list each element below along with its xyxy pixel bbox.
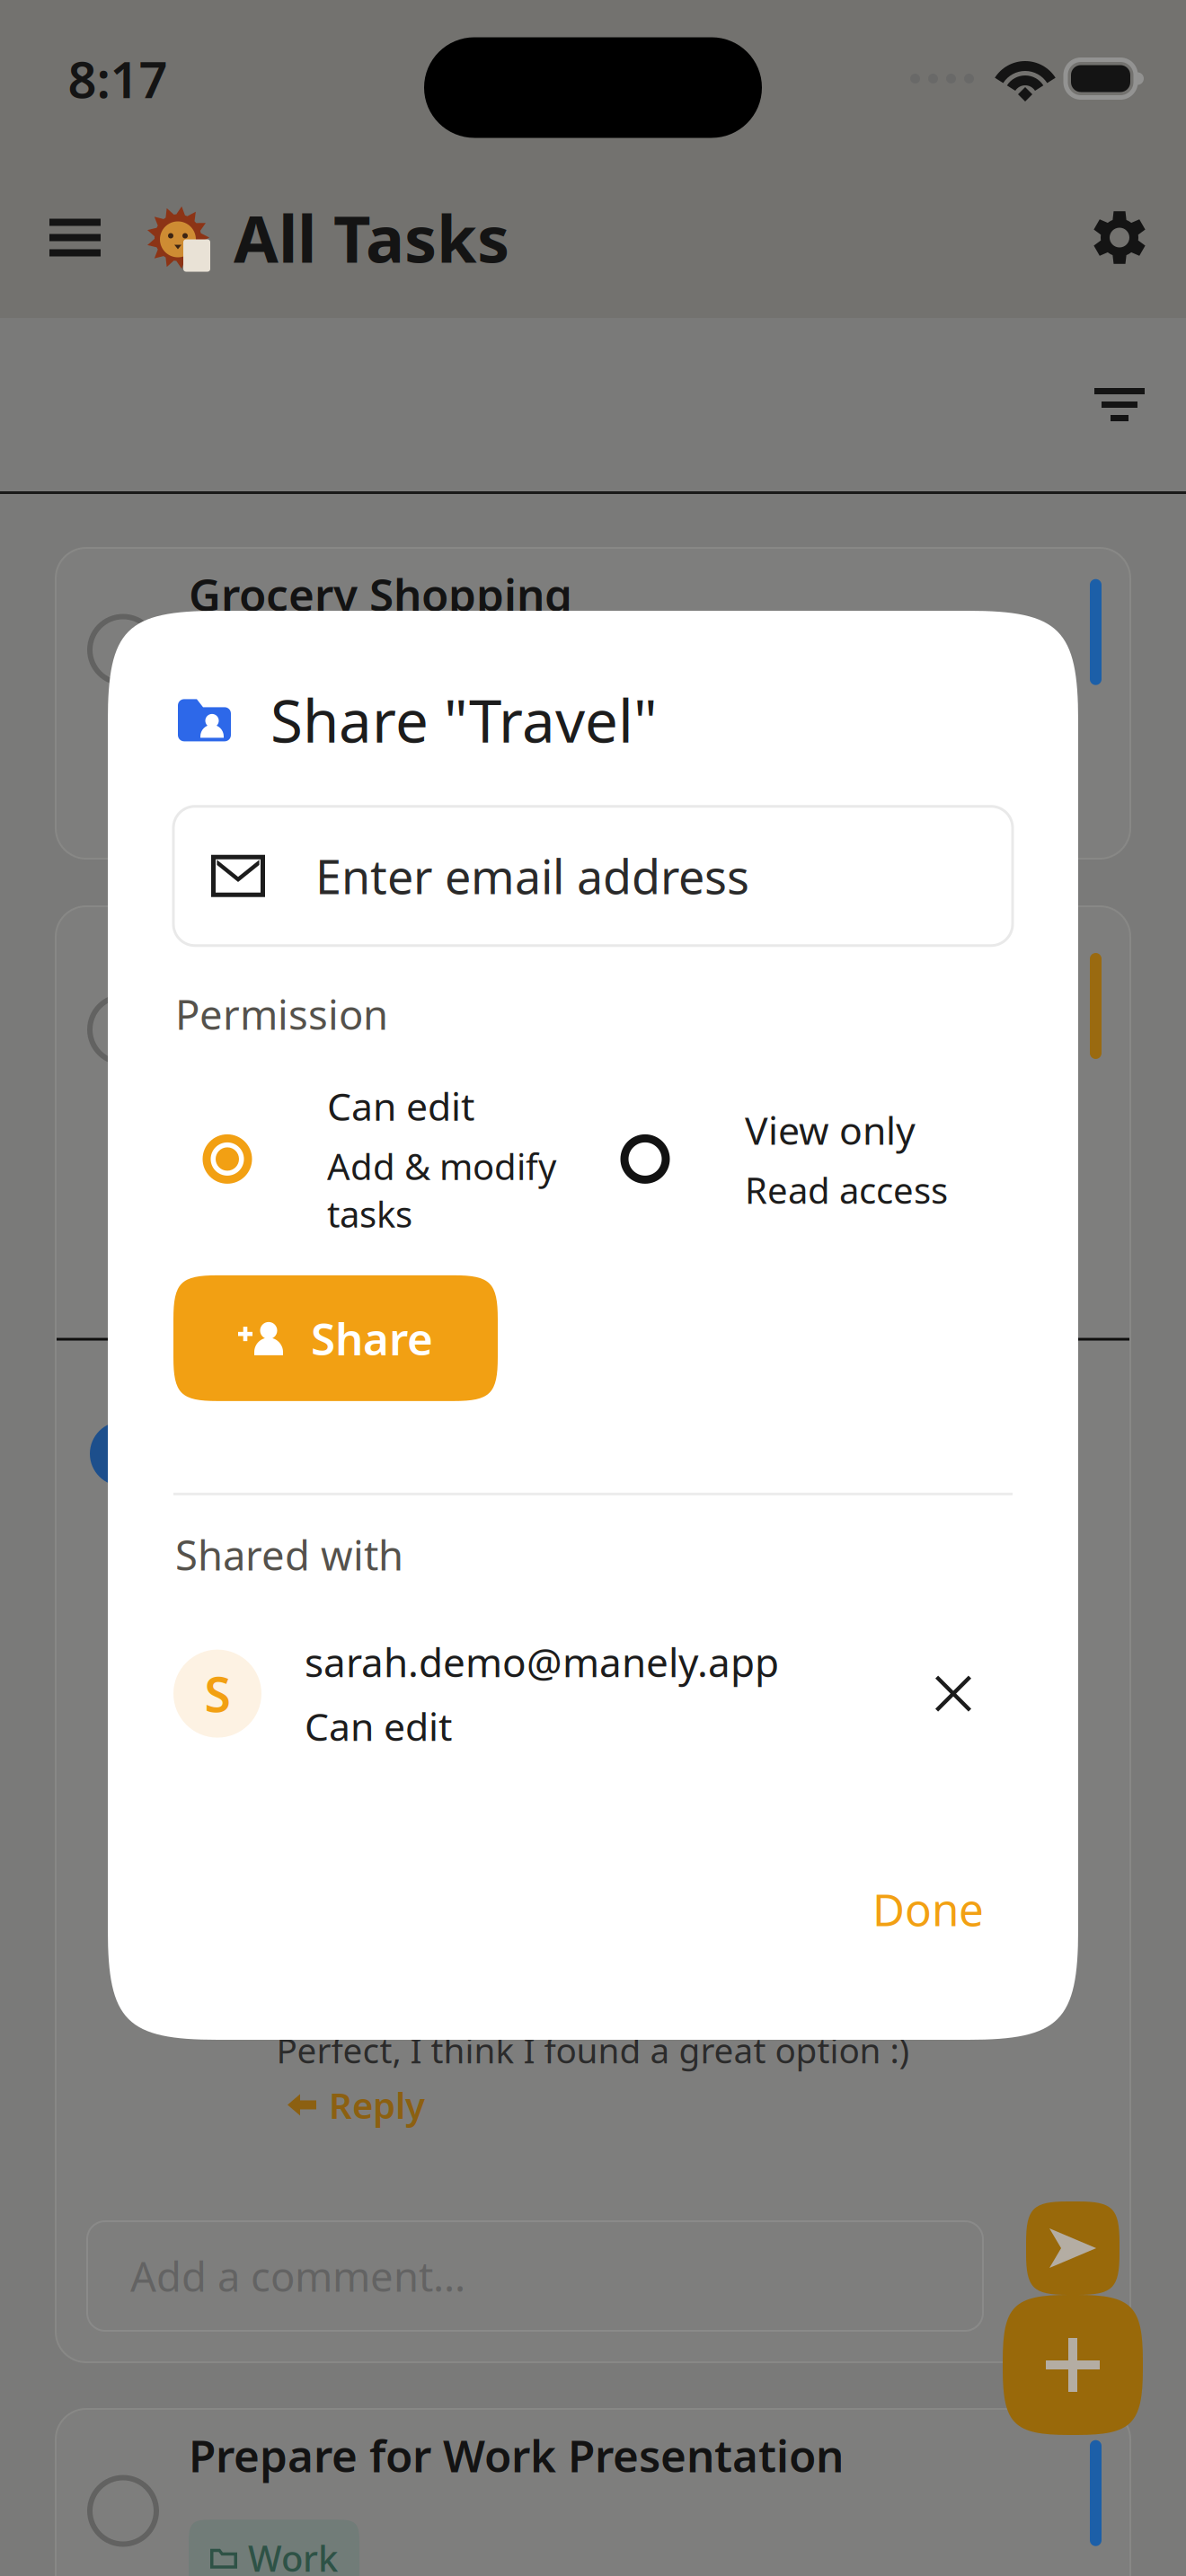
staticText: Can edit bbox=[327, 1081, 474, 1131]
button[interactable]: Settings bbox=[1072, 185, 1167, 291]
button[interactable]: Filter bbox=[1080, 374, 1159, 436]
staticText: Share bbox=[311, 1309, 433, 1368]
staticText: S bbox=[204, 1662, 230, 1725]
staticText: 8:17 bbox=[68, 45, 168, 112]
staticText: Add a comment... bbox=[130, 2249, 465, 2303]
staticText: View only bbox=[745, 1104, 916, 1155]
button[interactable]: Remove sarah.demo@manely.app bbox=[919, 1659, 987, 1728]
staticText: Done bbox=[872, 1879, 984, 1938]
button[interactable]: Share bbox=[173, 1275, 498, 1401]
button[interactable]: Menu bbox=[24, 188, 126, 287]
staticText: Share "Travel" bbox=[270, 681, 658, 759]
button[interactable]: Can edit bbox=[202, 1081, 568, 1238]
staticText: Permission bbox=[175, 987, 388, 1041]
staticText: Can edit bbox=[305, 1701, 452, 1752]
staticText: Enter email address bbox=[315, 845, 749, 907]
staticText: Travel bbox=[248, 1053, 350, 1100]
button[interactable]: View only bbox=[620, 1104, 968, 1214]
button[interactable]: Send comment bbox=[1026, 2201, 1120, 2295]
staticText: Add & modify tasks bbox=[327, 1142, 556, 1238]
staticText: Grocery Shopping bbox=[189, 565, 572, 624]
staticText: Work bbox=[248, 2534, 338, 2576]
staticText: Book Flights to Tokyo bbox=[189, 944, 650, 1003]
staticText: Read access bbox=[745, 1166, 948, 1214]
staticText: sarah.demo@manely.app bbox=[305, 1636, 779, 1688]
staticText: All Tasks bbox=[234, 195, 509, 281]
staticText: Perfect, I think I found a great option … bbox=[276, 2027, 910, 2073]
staticText: Shopping bbox=[248, 673, 412, 721]
button[interactable]: Done bbox=[849, 1865, 1007, 1953]
button[interactable]: Add task bbox=[1003, 2295, 1143, 2435]
staticText: Reply bbox=[329, 2081, 425, 2129]
staticText: Prepare for Work Presentation bbox=[189, 2426, 844, 2485]
staticText: Shared with bbox=[175, 1528, 403, 1582]
